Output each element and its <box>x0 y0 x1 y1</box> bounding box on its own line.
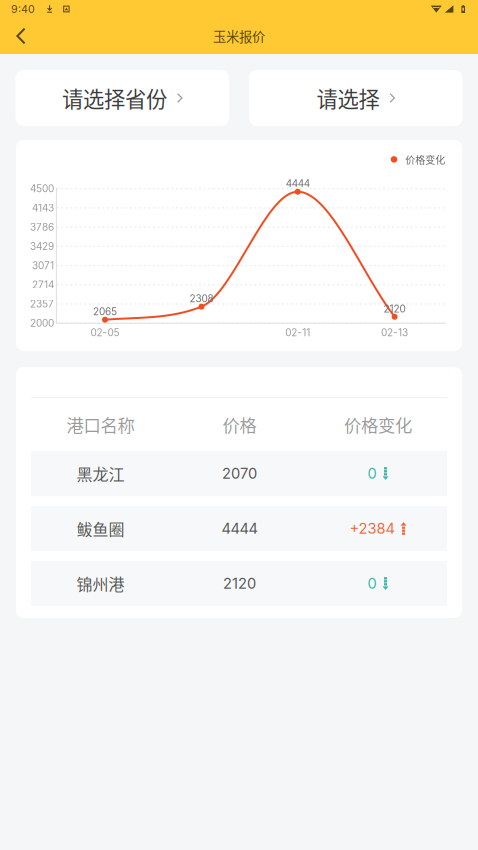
staticText: 4500 <box>30 183 54 195</box>
staticText: 3786 <box>30 221 54 233</box>
button[interactable]: 黑龙江 <box>31 451 447 496</box>
staticText: 4444 <box>286 178 310 190</box>
staticText: 请选择省份 <box>62 83 167 113</box>
staticText: 4143 <box>32 202 54 214</box>
staticText: 鲅鱼圈 <box>76 517 124 540</box>
staticText: 黑龙江 <box>76 462 124 485</box>
staticText: 9:40 <box>11 2 35 15</box>
button[interactable]: 锦州港 <box>31 561 447 606</box>
staticText: 价格变化 <box>344 412 412 437</box>
staticText: 2357 <box>30 298 54 310</box>
staticText: 3429 <box>30 240 54 252</box>
button[interactable]: 请选择省份 <box>15 70 229 126</box>
staticText: 4444 <box>221 520 257 537</box>
staticText: 港口名称 <box>66 412 134 437</box>
staticText: 2308 <box>189 293 213 305</box>
staticText: 锦州港 <box>76 572 124 595</box>
staticText: 玉米报价 <box>213 26 265 46</box>
staticText: 0 <box>367 465 376 482</box>
staticText: 2070 <box>222 465 257 482</box>
staticText: 请选择 <box>316 83 379 113</box>
button[interactable]: 返回 <box>0 19 42 53</box>
staticText: 2000 <box>30 317 54 329</box>
staticText: 2714 <box>32 279 54 291</box>
staticText: +2384 <box>349 520 394 537</box>
staticText: 02-13 <box>381 327 408 339</box>
staticText: 价格变化 <box>405 152 445 167</box>
staticText: 2065 <box>93 306 117 318</box>
button[interactable]: 鲅鱼圈 <box>31 506 447 551</box>
staticText: 2120 <box>384 303 406 315</box>
staticText: 02-05 <box>90 327 119 339</box>
button[interactable]: 请选择 <box>249 70 462 126</box>
staticText: 0 <box>367 575 376 592</box>
staticText: 价格 <box>222 412 256 437</box>
staticText: 2120 <box>223 575 256 592</box>
staticText: 3071 <box>32 259 54 272</box>
staticText: 02-11 <box>285 327 310 339</box>
